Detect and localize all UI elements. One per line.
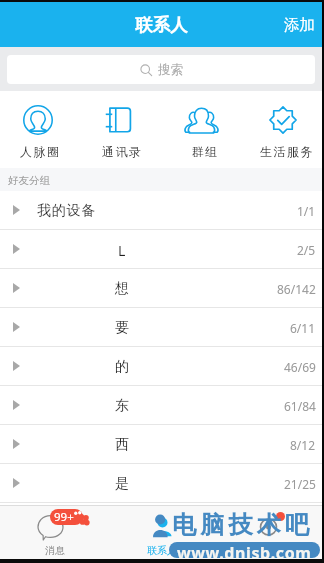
staticText: 想 <box>115 280 130 298</box>
button[interactable]: 联系人 <box>108 506 215 559</box>
staticText: 群组 <box>191 144 218 159</box>
button[interactable]: 动态 <box>215 506 322 559</box>
button[interactable]: 搜索 <box>7 55 315 84</box>
staticText: 搜索 <box>158 62 183 78</box>
staticText: 好友分组 <box>8 174 50 187</box>
button[interactable]: 99+ <box>0 506 108 559</box>
button[interactable]: 添加 <box>272 7 322 43</box>
staticText: 生活服务 <box>259 144 313 159</box>
staticText: 消息 <box>45 544 65 557</box>
button[interactable]: 的 <box>0 347 322 385</box>
staticText: 的 <box>115 358 130 376</box>
staticText: 2/5 <box>297 242 316 258</box>
button[interactable]: 东 <box>0 386 322 424</box>
button[interactable]: 是 <box>0 464 322 502</box>
staticText: 人脉圈 <box>20 144 61 159</box>
staticText: 动态 <box>259 544 279 557</box>
staticText: 要 <box>115 319 130 337</box>
staticText: 99+ <box>54 509 74 525</box>
staticText: L <box>118 241 127 260</box>
button[interactable]: 群组 <box>160 91 242 168</box>
button[interactable]: 人脉圈 <box>0 91 78 168</box>
button[interactable]: 西 <box>0 425 322 463</box>
staticText: 东 <box>115 397 130 415</box>
staticText: 21/25 <box>284 476 316 492</box>
staticText: 我的设备 <box>37 202 97 220</box>
button[interactable]: 要 <box>0 308 322 346</box>
staticText: 联系人 <box>135 14 188 36</box>
staticText: 8/12 <box>290 437 316 453</box>
staticText: 1/1 <box>297 203 316 219</box>
staticText: 通讯录 <box>102 144 143 159</box>
staticText: 86/142 <box>277 281 316 297</box>
staticText: 61/84 <box>284 398 316 414</box>
staticText: 46/69 <box>284 359 316 375</box>
staticText: www.dnjsb.com <box>177 542 312 558</box>
staticText: 电脑技术吧 <box>170 510 311 540</box>
staticText: 是 <box>115 475 130 493</box>
button[interactable]: 通讯录 <box>78 91 160 168</box>
button[interactable]: L <box>0 230 322 268</box>
staticText: 西 <box>115 436 130 454</box>
staticText: 添加 <box>284 15 315 35</box>
button[interactable]: 生活服务 <box>242 91 324 168</box>
button[interactable]: 我的设备 <box>0 191 322 229</box>
staticText: 联系人 <box>147 544 177 557</box>
staticText: 6/11 <box>290 320 316 336</box>
button[interactable]: 想 <box>0 269 322 307</box>
